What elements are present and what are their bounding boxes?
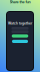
staticText: Share the fun [9,0,30,4]
staticText: Watch together [8,22,32,25]
